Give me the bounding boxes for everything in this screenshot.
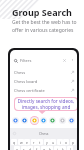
other: Clear xyxy=(63,59,66,62)
button[interactable]: l xyxy=(67,146,73,150)
button[interactable]: Category xyxy=(48,116,57,125)
button[interactable]: Directly search for videos, images, shop… xyxy=(15,98,77,110)
button[interactable]: Category xyxy=(58,116,67,125)
button[interactable]: i xyxy=(57,139,63,145)
staticText: j xyxy=(57,147,58,150)
button[interactable]: u xyxy=(50,139,56,145)
button[interactable]: w xyxy=(18,139,24,145)
staticText: Group Search xyxy=(12,6,72,18)
button[interactable]: h xyxy=(47,146,53,150)
staticText: Chess xyxy=(14,70,26,75)
button[interactable]: Category xyxy=(39,116,48,125)
staticText: k xyxy=(62,147,64,150)
staticText: Chess xyxy=(39,131,49,136)
button[interactable]: s xyxy=(21,146,27,150)
button[interactable]: y xyxy=(44,139,50,145)
staticText: h xyxy=(49,147,52,150)
button[interactable]: t xyxy=(37,139,43,145)
button[interactable]: k xyxy=(60,146,66,150)
staticText: g xyxy=(43,147,46,150)
button[interactable]: Chess xyxy=(10,68,77,77)
button[interactable]: p xyxy=(70,139,76,145)
staticText: Chess board xyxy=(14,79,38,84)
staticText: Chess certificate xyxy=(14,88,45,93)
button[interactable]: Chess certificate xyxy=(10,86,77,95)
staticText: u xyxy=(52,140,55,145)
button[interactable]: f xyxy=(34,146,40,150)
other: Voice search xyxy=(71,59,74,62)
staticText: y xyxy=(46,140,48,145)
staticText: a xyxy=(16,147,18,150)
staticText: Filters xyxy=(20,58,32,63)
staticText: s xyxy=(23,147,25,150)
button[interactable]: g xyxy=(41,146,47,150)
staticText: Directly search for videos, images, shop… xyxy=(15,98,77,110)
button[interactable]: Category xyxy=(30,116,39,125)
button[interactable]: q xyxy=(11,139,17,145)
staticText: i xyxy=(60,140,61,145)
staticText: t xyxy=(39,140,41,145)
staticText: q xyxy=(13,140,16,145)
button[interactable]: a xyxy=(14,146,20,150)
button[interactable]: o xyxy=(63,139,69,145)
staticText: l xyxy=(70,147,71,150)
staticText: o xyxy=(65,140,68,145)
staticText: f xyxy=(36,147,38,150)
staticText: d xyxy=(29,147,32,150)
button[interactable]: Category xyxy=(11,116,20,125)
button[interactable]: Filters xyxy=(10,56,77,65)
button[interactable]: Category xyxy=(67,116,76,125)
button[interactable]: j xyxy=(54,146,60,150)
button[interactable]: e xyxy=(24,139,30,145)
staticText: Get the best the web has to offer in var… xyxy=(12,19,77,34)
staticText: e xyxy=(26,140,28,145)
button[interactable]: d xyxy=(27,146,33,150)
staticText: r xyxy=(33,140,35,145)
button[interactable]: Chess xyxy=(39,131,49,136)
button[interactable]: Category xyxy=(20,116,29,125)
staticText: w xyxy=(20,140,23,145)
staticText: p xyxy=(72,140,75,145)
button[interactable]: Chess board xyxy=(10,77,77,86)
button[interactable]: r xyxy=(31,139,37,145)
